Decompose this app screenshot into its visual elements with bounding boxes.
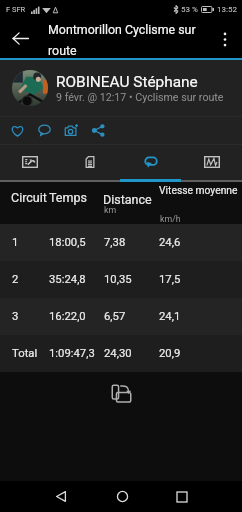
staticText: 17,5 — [159, 273, 181, 286]
staticText: 35:24,8 — [49, 273, 86, 286]
staticText: Distance — [103, 192, 152, 207]
staticText: F SFR — [6, 5, 26, 14]
button[interactable]: 1 — [0, 224, 242, 261]
staticText: Temps — [49, 190, 87, 205]
staticText: 6,57 — [104, 310, 126, 323]
button[interactable]: More options — [208, 22, 242, 56]
staticText: 20,9 — [159, 347, 181, 360]
button[interactable]: Details — [60, 145, 120, 179]
staticText: Circuit — [11, 190, 47, 205]
button[interactable]: Charts — [181, 145, 242, 179]
staticText: ROBINEAU Stéphane — [56, 73, 198, 91]
staticText: 7,38 — [104, 236, 126, 249]
staticText: km — [104, 205, 117, 215]
button[interactable]: Back — [0, 19, 40, 58]
button[interactable]: Laps — [120, 145, 181, 179]
staticText: 13:52 — [217, 5, 237, 14]
button[interactable]: ROBINEAU Stéphane — [0, 60, 242, 116]
staticText: 9 févr. @ 12:17 • Cyclisme sur route — [56, 91, 224, 104]
button[interactable]: Back — [44, 481, 78, 512]
staticText: 24,1 — [159, 310, 181, 323]
button[interactable]: Home — [105, 481, 139, 512]
staticText: 3 — [12, 310, 19, 323]
staticText: 53 % — [181, 5, 198, 14]
button[interactable]: Like — [4, 117, 31, 144]
button[interactable]: Total — [0, 335, 242, 372]
button[interactable]: Share — [85, 117, 112, 144]
staticText: 18:00,5 — [49, 236, 86, 249]
staticText: Vitesse moyenne — [159, 184, 238, 196]
staticText: 1:09:47,3 — [49, 347, 95, 360]
button[interactable]: 2 — [0, 261, 242, 298]
staticText: 1 — [12, 236, 19, 249]
staticText: Total — [12, 347, 38, 360]
button[interactable]: Add photo — [58, 117, 85, 144]
button[interactable]: Rotate screen — [105, 377, 137, 409]
staticText: 16:22,0 — [49, 310, 86, 323]
staticText: 24,6 — [159, 236, 181, 249]
staticText: 24,30 — [104, 347, 132, 360]
button[interactable]: Comment — [31, 117, 58, 144]
button[interactable]: Recents — [165, 481, 199, 512]
staticText: km/h — [160, 214, 181, 224]
button[interactable]: 3 — [0, 298, 242, 335]
staticText: Montmorillon Cyclisme sur route — [48, 22, 212, 58]
staticText: 10,35 — [104, 273, 132, 286]
staticText: 2 — [12, 273, 19, 286]
button[interactable]: Map — [0, 145, 60, 179]
